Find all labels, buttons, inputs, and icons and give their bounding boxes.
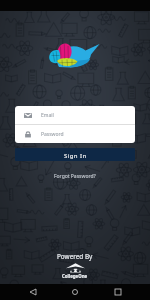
button[interactable]: Home: [65, 284, 85, 300]
button[interactable]: Recent apps: [108, 284, 128, 300]
staticText: CollegeOne: [62, 273, 88, 279]
staticText: Forgot Password?: [54, 173, 96, 180]
button[interactable]: Forgot Password?: [0, 170, 150, 182]
staticText: Sign In: [64, 151, 87, 159]
staticText: Password: [41, 131, 64, 138]
button[interactable]: Email: [15, 106, 135, 124]
staticText: Powered By: [57, 252, 93, 261]
staticText: Email: [41, 112, 54, 119]
button[interactable]: Back: [23, 284, 43, 300]
button[interactable]: Sign In: [15, 148, 135, 161]
button[interactable]: Password: [15, 125, 135, 143]
